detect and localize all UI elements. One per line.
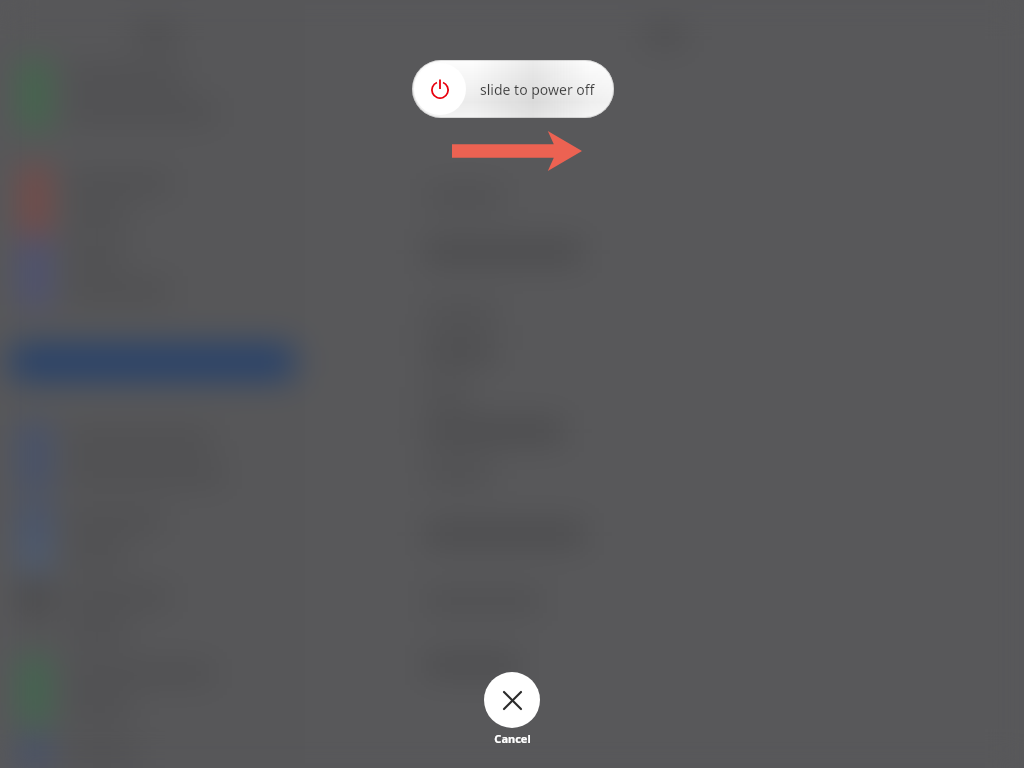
button[interactable]: slide to power off [412, 60, 614, 118]
button[interactable]: Cancel [484, 672, 540, 746]
button[interactable]: Cancel [484, 672, 540, 728]
staticText: slide to power off [480, 80, 595, 99]
staticText: Cancel [494, 731, 531, 746]
